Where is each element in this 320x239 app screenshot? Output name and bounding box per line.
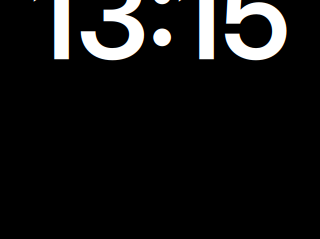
staticText: 13:15 <box>31 0 290 88</box>
